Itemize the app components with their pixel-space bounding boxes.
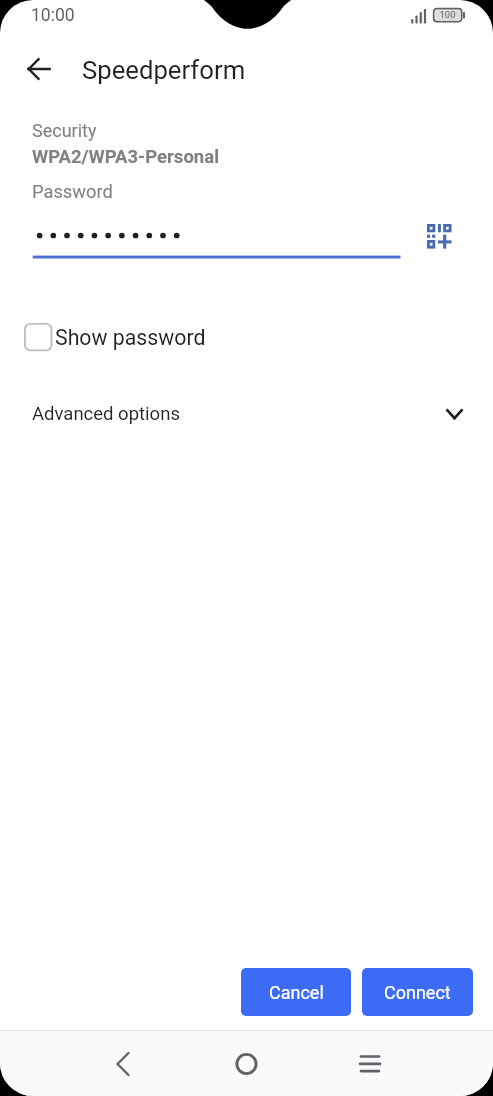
staticText: 10:00 <box>31 5 75 26</box>
staticText: Connect <box>384 982 451 1003</box>
staticText: WPA2/WPA3-Personal <box>32 146 220 168</box>
button[interactable]: Scan QR code <box>415 212 463 260</box>
button[interactable]: Back <box>15 45 62 92</box>
staticText: Cancel <box>269 982 324 1003</box>
button[interactable]: Back <box>99 1040 147 1088</box>
button[interactable]: Connect <box>362 968 473 1016</box>
staticText: Security <box>32 120 97 141</box>
button[interactable]: Advanced options <box>0 396 493 432</box>
button[interactable]: Show password <box>18 317 211 357</box>
staticText: Speedperform <box>82 55 246 85</box>
staticText: Password <box>32 181 113 202</box>
staticText: 100 <box>433 9 462 20</box>
button[interactable]: Home <box>222 1040 270 1088</box>
staticText: Advanced options <box>32 403 180 425</box>
button[interactable]: Recent apps <box>346 1040 394 1088</box>
button[interactable]: Cancel <box>241 968 351 1016</box>
staticText: Show password <box>55 325 206 350</box>
